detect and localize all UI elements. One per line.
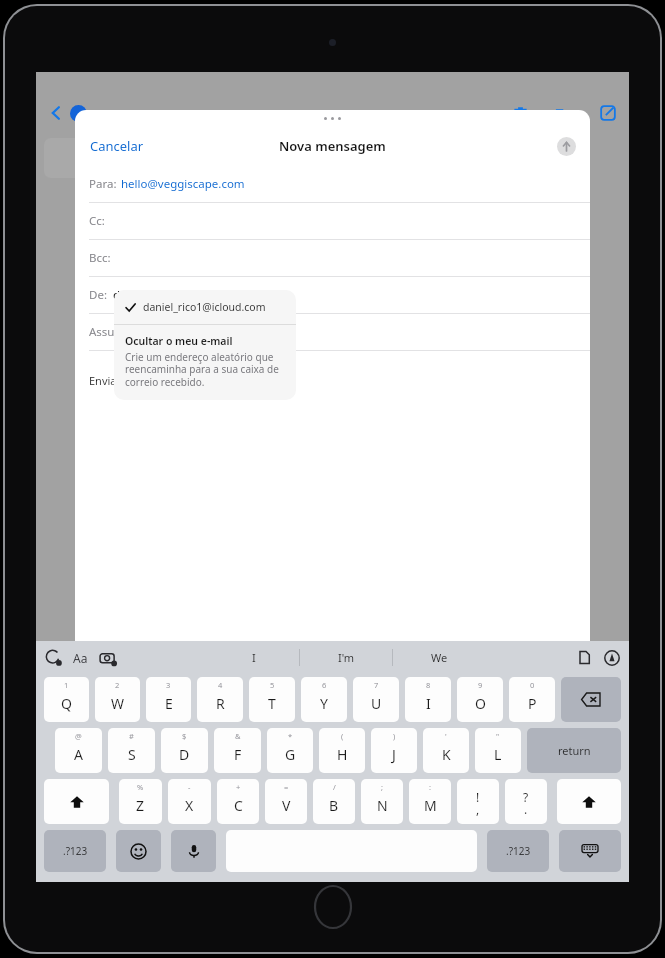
button[interactable]: 2: [95, 677, 140, 722]
button[interactable]: Assunto:: [75, 314, 590, 350]
button[interactable]: Documents: [577, 650, 592, 665]
staticText: /: [333, 782, 336, 792]
staticText: :: [429, 782, 432, 792]
staticText: 3: [166, 680, 171, 690]
button[interactable]: I: [208, 641, 299, 674]
button[interactable]: Undo: [45, 649, 62, 666]
staticText: Crie um endereço aleatório que reencamin…: [125, 350, 286, 389]
button[interactable]: Aa: [73, 650, 88, 666]
staticText: ,: [476, 801, 480, 817]
button[interactable]: Send: [557, 137, 576, 156]
staticText: $: [182, 731, 187, 741]
button[interactable]: Backspace: [561, 677, 621, 722]
staticText: daniel_rico1@icloud.com: [143, 300, 266, 314]
button[interactable]: ": [475, 728, 521, 773]
button[interactable]: ?: [505, 779, 547, 824]
button[interactable]: 0: [509, 677, 555, 722]
button[interactable]: .?123: [487, 830, 549, 872]
button[interactable]: 5: [249, 677, 295, 722]
button[interactable]: Shift: [44, 779, 109, 824]
button[interactable]: Hide keyboard: [559, 830, 621, 872]
button[interactable]: !: [457, 779, 499, 824]
button[interactable]: (: [319, 728, 365, 773]
button[interactable]: Cc:: [75, 203, 590, 239]
staticText: =: [284, 782, 289, 792]
button[interactable]: De:: [75, 277, 590, 313]
staticText: Ocultar o meu e-mail: [125, 334, 233, 348]
button[interactable]: Shift: [557, 779, 621, 824]
button[interactable]: Bcc:: [75, 240, 590, 276]
button[interactable]: ;: [361, 779, 403, 824]
staticText: R: [216, 694, 225, 713]
button[interactable]: %: [119, 779, 162, 824]
staticText: .: [524, 801, 528, 817]
staticText: M: [424, 796, 437, 815]
staticText: I'm: [338, 650, 355, 665]
button[interactable]: return: [527, 728, 621, 773]
staticText: Q: [61, 694, 72, 713]
button[interactable]: *: [267, 728, 313, 773]
staticText: Cc:: [89, 213, 105, 229]
button[interactable]: Cancelar: [88, 134, 146, 158]
button[interactable]: $: [161, 728, 208, 773]
staticText: Bcc:: [89, 250, 111, 266]
staticText: %: [137, 782, 144, 792]
button[interactable]: 8: [405, 677, 451, 722]
button[interactable]: I'm: [300, 641, 392, 674]
button[interactable]: ): [371, 728, 417, 773]
staticText: Z: [136, 796, 145, 815]
staticText: I: [252, 650, 256, 665]
button[interactable]: 9: [457, 677, 503, 722]
button[interactable]: #: [108, 728, 155, 773]
button[interactable]: .?123: [44, 830, 106, 872]
button[interactable]: We: [393, 641, 485, 674]
staticText: Nova mensagem: [279, 137, 386, 155]
button[interactable]: 1: [44, 677, 89, 722]
staticText: L: [494, 745, 502, 764]
button[interactable]: =: [265, 779, 307, 824]
button[interactable]: Dictate: [171, 830, 216, 872]
staticText: Assunto:: [89, 324, 136, 340]
button[interactable]: @: [55, 728, 102, 773]
button[interactable]: Camera: [99, 649, 117, 667]
staticText: N: [377, 796, 388, 815]
staticText: 8: [426, 680, 431, 690]
other: Delete: [512, 105, 529, 122]
button[interactable]: &: [214, 728, 261, 773]
staticText: Enviado do meu iPad: [89, 373, 198, 388]
staticText: hello@veggiscape.com: [121, 176, 245, 192]
button[interactable]: Emoji: [116, 830, 161, 872]
staticText: daniel_rico1@icloud.com: [113, 287, 250, 303]
staticText: ?: [523, 789, 529, 805]
button[interactable]: ': [423, 728, 469, 773]
button[interactable]: -: [168, 779, 211, 824]
button[interactable]: Markup: [604, 650, 620, 666]
button[interactable]: 4: [197, 677, 243, 722]
staticText: A: [74, 745, 83, 764]
button[interactable]: daniel_rico1@icloud.com: [114, 290, 296, 324]
staticText: @: [75, 731, 82, 741]
staticText: S: [128, 745, 136, 764]
staticText: I: [426, 694, 431, 713]
staticText: ;: [381, 782, 384, 792]
staticText: O: [475, 694, 486, 713]
button[interactable]: +: [217, 779, 259, 824]
button[interactable]: Para:: [75, 166, 590, 202]
staticText: X: [185, 796, 194, 815]
staticText: &: [235, 731, 241, 741]
staticText: *: [288, 731, 293, 741]
staticText: ': [445, 731, 447, 741]
staticText: .?123: [506, 844, 531, 858]
other: Move to folder: [555, 104, 573, 122]
staticText: C: [234, 796, 243, 815]
button[interactable]: 3: [146, 677, 191, 722]
button[interactable]: 7: [353, 677, 399, 722]
button[interactable]: :: [409, 779, 451, 824]
button[interactable]: /: [313, 779, 355, 824]
staticText: 5: [270, 680, 275, 690]
button[interactable]: 6: [301, 677, 347, 722]
button[interactable]: Ocultar o meu e-mail: [114, 325, 296, 400]
